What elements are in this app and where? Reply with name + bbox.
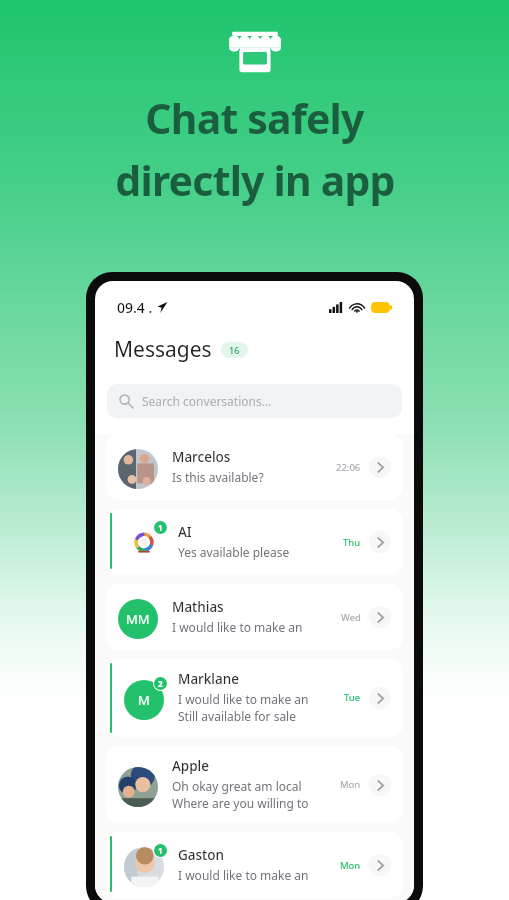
staticText: Messages bbox=[114, 335, 212, 364]
staticText: 09.4 . bbox=[117, 298, 153, 317]
staticText: Mon bbox=[340, 859, 361, 872]
button[interactable]: Search conversations... bbox=[107, 384, 402, 418]
staticText: Gaston bbox=[178, 846, 224, 864]
staticText: Marklane bbox=[178, 670, 239, 688]
staticText: M bbox=[138, 691, 150, 709]
staticText: I would like to make an offer: $ 5 bbox=[178, 691, 338, 707]
staticText: I would like to make an offer: 2 ا.د bbox=[172, 619, 335, 635]
staticText: Thu bbox=[343, 536, 361, 549]
button[interactable]: M bbox=[106, 659, 403, 737]
staticText: 22:06 bbox=[336, 461, 361, 474]
staticText: Marcelos bbox=[172, 448, 231, 466]
staticText: Mon bbox=[340, 778, 361, 791]
button[interactable]: Open conversation with Gaston bbox=[369, 854, 391, 876]
staticText: 2 bbox=[158, 678, 163, 689]
staticText: Search conversations... bbox=[142, 393, 272, 409]
staticText: Yes available please bbox=[178, 544, 290, 560]
button[interactable]: MM bbox=[106, 584, 403, 650]
staticText: Wed bbox=[341, 611, 361, 624]
staticText: directly in app bbox=[115, 152, 395, 208]
staticText: MM bbox=[126, 610, 150, 628]
button[interactable]: 1 bbox=[106, 509, 403, 575]
staticText: Mathias bbox=[172, 598, 224, 616]
staticText: Chat safely bbox=[145, 90, 364, 146]
button[interactable]: Open conversation with Mathias bbox=[369, 606, 391, 628]
button[interactable]: Open conversation with Apple bbox=[369, 774, 391, 796]
staticText: 16 bbox=[229, 344, 240, 356]
staticText: Oh okay great am local bbox=[172, 778, 302, 794]
button[interactable]: Open conversation with AI bbox=[369, 531, 391, 553]
staticText: Still available for sale bbox=[178, 708, 296, 724]
button[interactable]: Marcelos bbox=[106, 434, 403, 500]
staticText: Where are you willing to meet up bbox=[172, 795, 334, 811]
staticText: 1 bbox=[158, 845, 163, 856]
staticText: 1 bbox=[158, 522, 163, 533]
staticText: I would like to make an offer: $ 5 bbox=[178, 867, 334, 883]
button[interactable]: Open conversation with Marklane bbox=[369, 687, 391, 709]
button[interactable]: 1 bbox=[106, 832, 403, 898]
staticText: Tue bbox=[344, 691, 361, 704]
staticText: AI bbox=[178, 523, 192, 541]
button[interactable]: Apple bbox=[106, 746, 403, 823]
staticText: Apple bbox=[172, 757, 209, 775]
button[interactable]: Open conversation with Marcelos bbox=[369, 456, 391, 478]
staticText: Is this available? bbox=[172, 469, 264, 485]
